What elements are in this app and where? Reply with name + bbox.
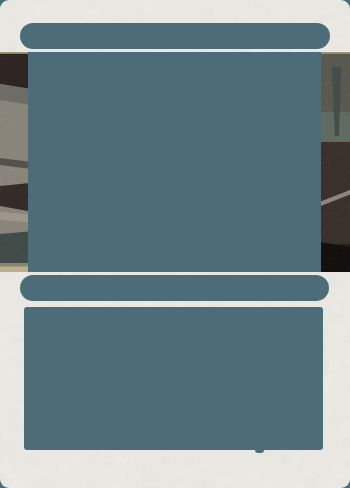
button[interactable] (20, 23, 330, 49)
button[interactable] (20, 275, 329, 301)
